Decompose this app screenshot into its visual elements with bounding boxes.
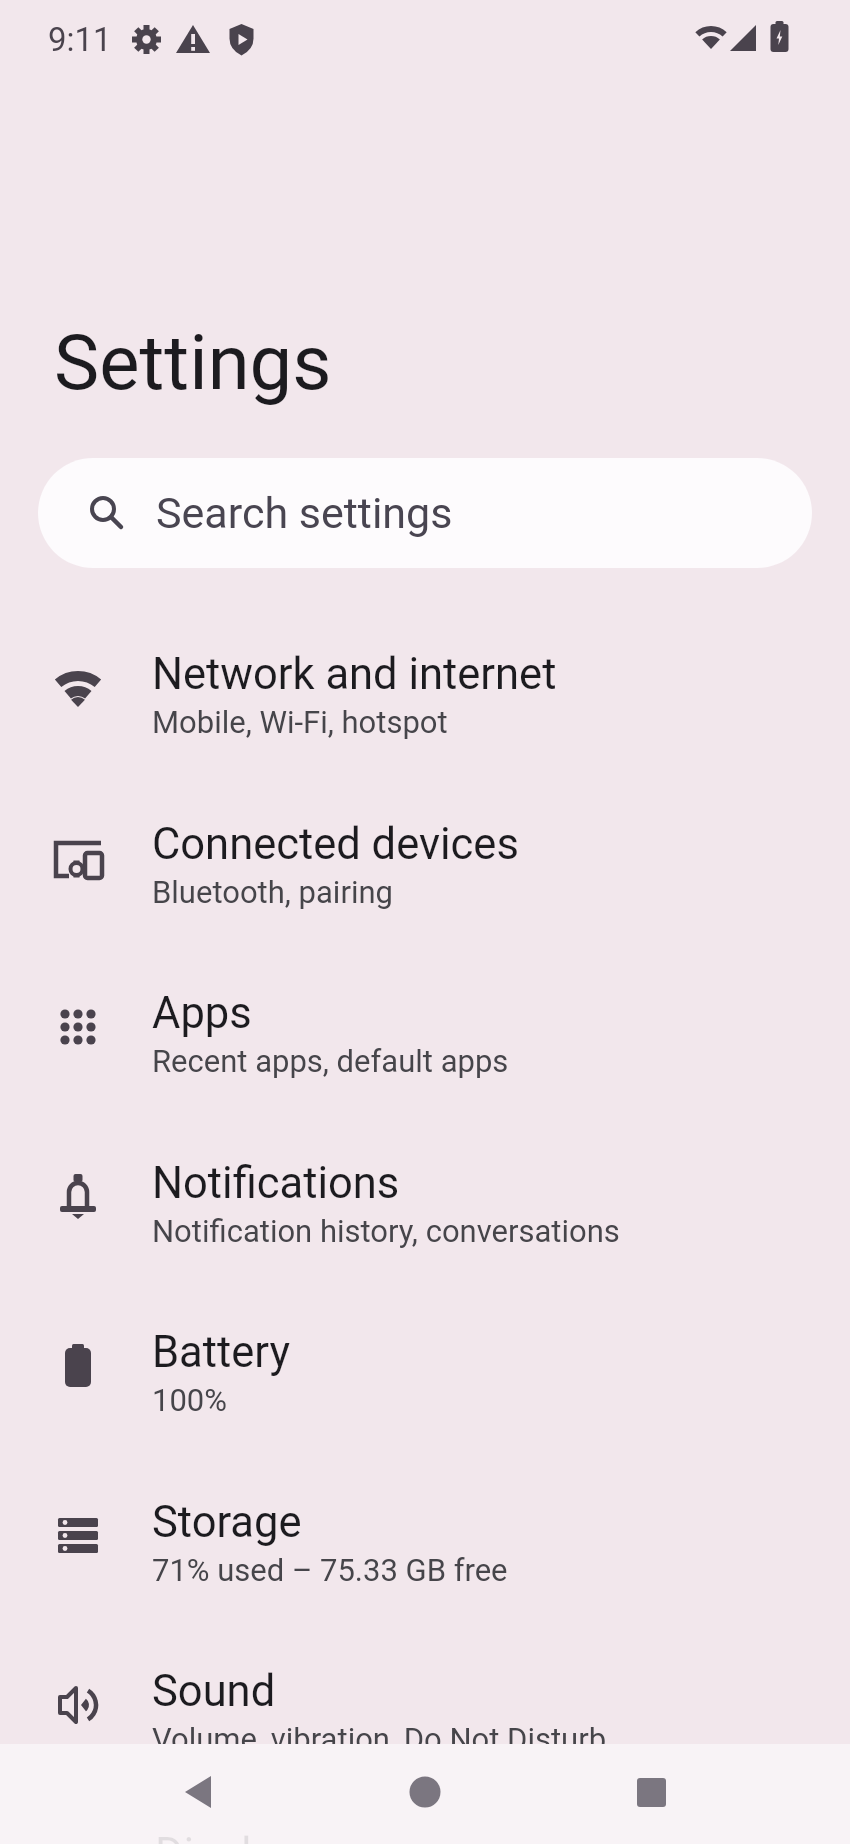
staticText: Recent apps, default apps: [152, 1043, 509, 1079]
button[interactable]: [397, 1764, 453, 1820]
button[interactable]: Notifications: [0, 1119, 850, 1288]
button[interactable]: Battery: [0, 1288, 850, 1457]
staticText: Battery: [152, 1327, 290, 1378]
staticText: Notification history, conversations: [152, 1213, 620, 1249]
staticText: 9:11: [48, 20, 112, 59]
staticText: Settings: [54, 318, 332, 407]
button[interactable]: Search settings: [38, 458, 812, 568]
button[interactable]: [170, 1764, 226, 1820]
staticText: Bluetooth, pairing: [152, 874, 393, 910]
button[interactable]: Sound: [0, 1627, 850, 1796]
staticText: Search settings: [156, 488, 453, 538]
staticText: 71% used – 75.33 GB free: [152, 1552, 508, 1588]
staticText: Display: [155, 1829, 296, 1844]
staticText: Volume, vibration, Do Not Disturb: [152, 1721, 607, 1757]
button[interactable]: Storage: [0, 1458, 850, 1627]
staticText: Sound: [152, 1666, 276, 1717]
staticText: 100%: [152, 1382, 227, 1418]
staticText: Mobile, Wi-Fi, hotspot: [152, 704, 448, 740]
staticText: Apps: [152, 988, 252, 1039]
staticText: Notifications: [152, 1158, 400, 1209]
button[interactable]: Apps: [0, 949, 850, 1118]
staticText: Storage: [152, 1497, 302, 1548]
button[interactable]: [623, 1764, 679, 1820]
button[interactable]: Network and internet: [0, 610, 850, 779]
staticText: Connected devices: [152, 819, 519, 870]
button[interactable]: Connected devices: [0, 780, 850, 949]
staticText: Network and internet: [152, 649, 557, 700]
